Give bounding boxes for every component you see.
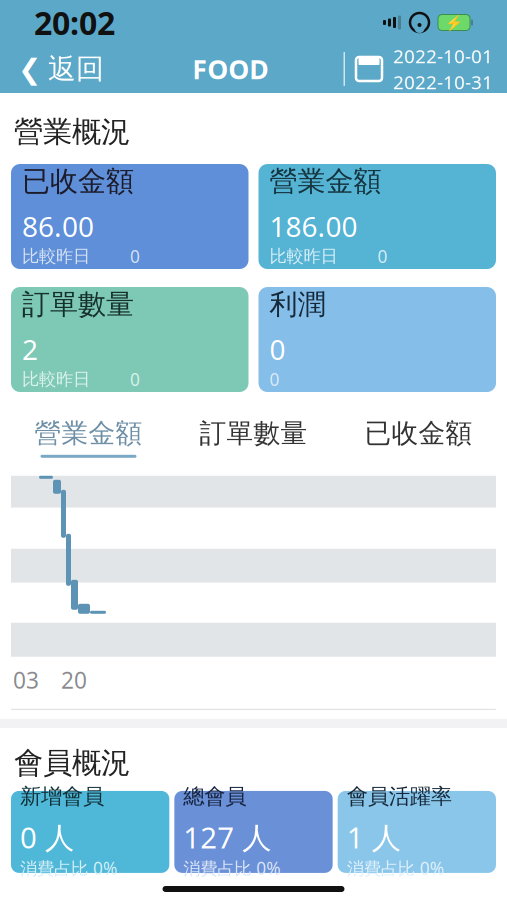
staticText: 新增會員	[20, 783, 104, 809]
staticText: 已收金額	[364, 417, 472, 450]
staticText: 營業概況	[14, 114, 130, 150]
button[interactable]: 新增會員	[11, 791, 169, 873]
button[interactable]: 營業金額	[258, 164, 496, 269]
staticText: 186.00	[269, 208, 357, 245]
staticText: FOOD	[192, 51, 269, 87]
staticText: 2022-10-31	[393, 69, 493, 94]
staticText: 0	[130, 368, 140, 391]
button[interactable]: 訂單數量	[11, 287, 248, 392]
staticText: ❮	[18, 53, 41, 85]
staticText: 03	[13, 665, 39, 695]
button[interactable]: 已收金額	[11, 164, 248, 269]
staticText: 返回	[48, 52, 104, 86]
staticText: 會員活躍率	[347, 783, 452, 809]
staticText: 營業金額	[269, 164, 381, 199]
staticText: 0	[269, 368, 279, 391]
staticText: 0 人	[20, 817, 74, 856]
staticText: 利潤	[269, 287, 325, 322]
staticText: 2	[22, 331, 38, 368]
staticText: 比較昨日	[269, 246, 337, 267]
staticText: 20	[61, 665, 87, 695]
staticText: 2022-10-01	[393, 44, 493, 68]
button[interactable]: ❮	[4, 46, 118, 92]
staticText: 1 人	[347, 817, 401, 856]
staticText: 0	[377, 245, 387, 268]
button[interactable]: 2022-10-01	[343, 40, 493, 98]
staticText: 已收金額	[22, 164, 134, 199]
button[interactable]: 營業金額	[6, 417, 171, 458]
staticText: 0	[130, 245, 140, 268]
staticText: 會員概況	[14, 745, 130, 781]
staticText: 127 人	[183, 817, 271, 856]
staticText: ⚡	[445, 14, 463, 31]
staticText: 總會員	[183, 783, 246, 809]
staticText: 訂單數量	[199, 417, 307, 450]
staticText: 營業金額	[34, 417, 142, 450]
staticText: 比較昨日	[22, 369, 90, 390]
button[interactable]: 總會員	[174, 791, 333, 873]
staticText: 86.00	[22, 208, 94, 245]
staticText: 消費占比 0%	[183, 856, 280, 879]
button[interactable]: 會員活躍率	[338, 791, 496, 873]
button[interactable]: 已收金額	[336, 417, 501, 458]
staticText: 0	[269, 331, 285, 368]
staticText: 消費占比 0%	[20, 856, 117, 879]
staticText: 20:02	[34, 1, 115, 44]
staticText: 訂單數量	[22, 287, 134, 322]
staticText: 消費占比 0%	[347, 856, 444, 879]
button[interactable]: 訂單數量	[171, 417, 336, 458]
button[interactable]: 利潤	[258, 287, 496, 392]
staticText: 比較昨日	[22, 246, 90, 267]
